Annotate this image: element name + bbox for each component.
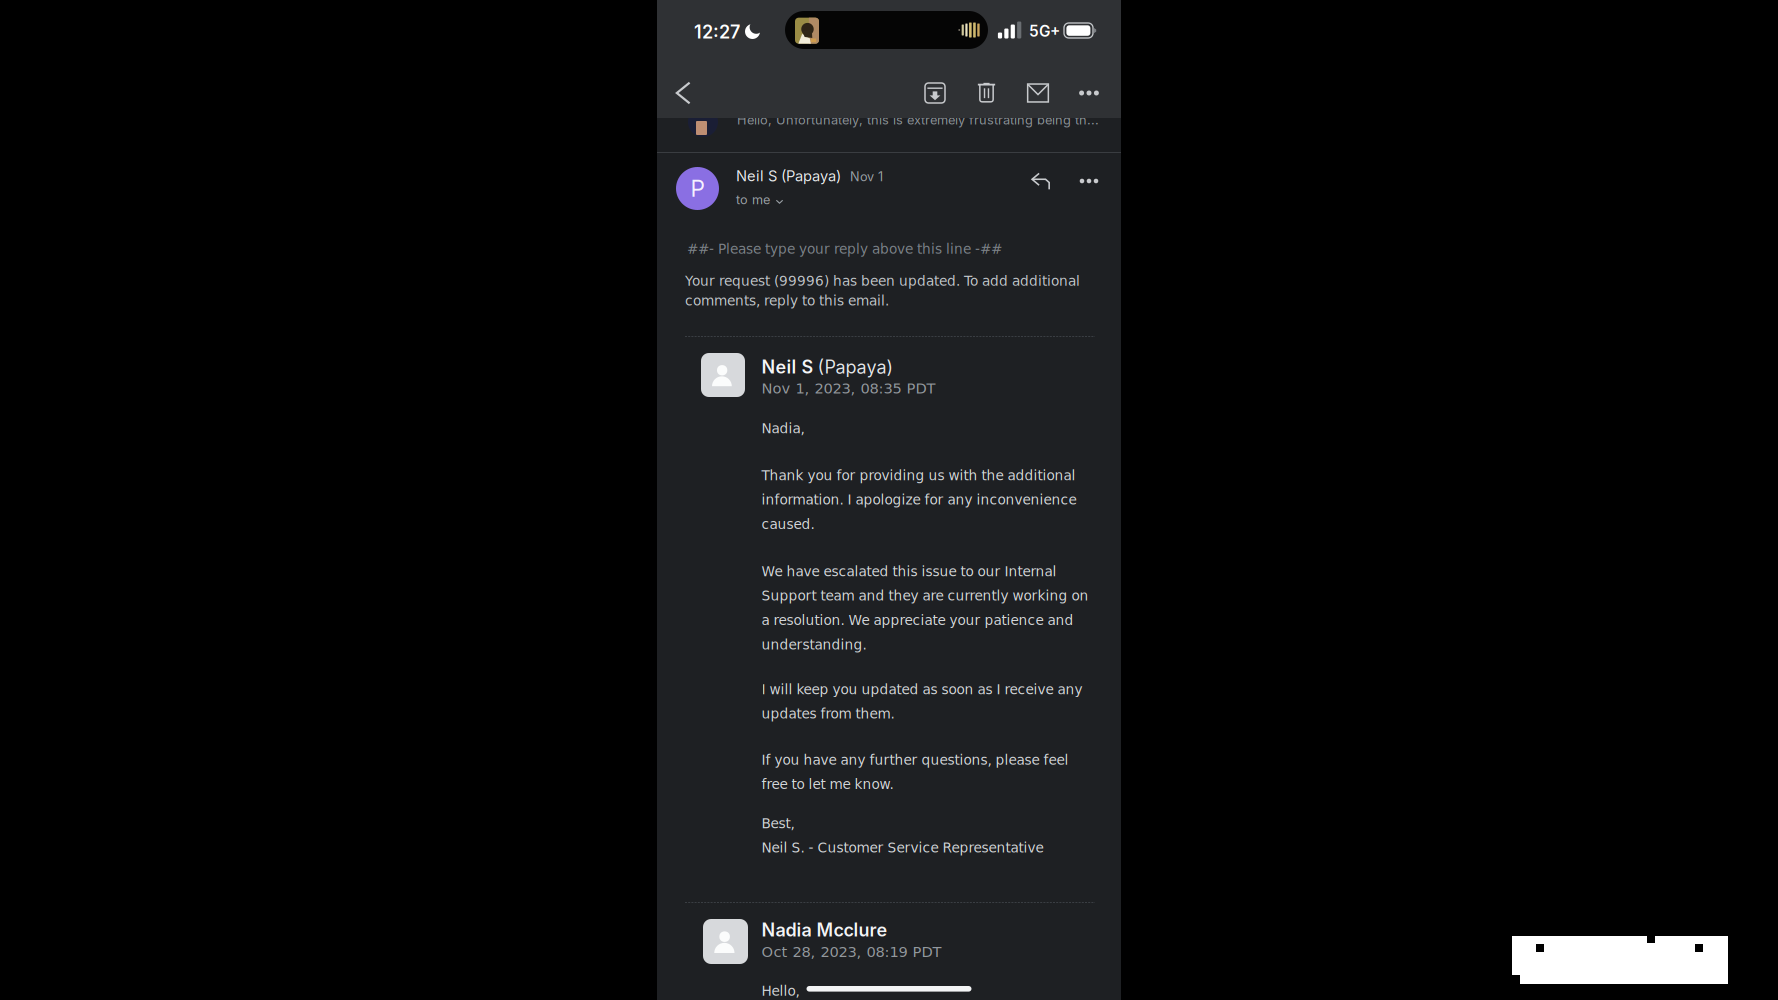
staticText: Best, Neil S. - Customer Service Represe… [761,815,1043,856]
staticText: Nov 1, 2023, 08:35 PDT [761,380,935,397]
staticText: Neil S (Papaya) [736,167,841,185]
staticText: If you have any further questions, pleas… [761,752,1068,792]
button[interactable]: Delete [964,70,1008,114]
staticText: Your request (99996) has been updated. T… [685,273,1080,309]
staticText: Nadia Mcclure [761,919,887,941]
staticText: We have escalated this issue to our Inte… [761,563,1088,653]
button[interactable]: Reply [1022,162,1060,200]
button[interactable]: to me [736,192,783,207]
button[interactable]: P [657,153,997,213]
staticText: Hello, [761,983,799,999]
staticText: Neil S [761,356,813,378]
staticText: Thank you for providing us with the addi… [761,467,1076,532]
staticText: 5G+ [1029,22,1060,41]
staticText: ##- Please type your reply above this li… [687,241,1002,257]
button[interactable]: Back [661,71,705,115]
button[interactable]: Archive [913,71,957,115]
button[interactable]: Mark as unread [1016,71,1060,115]
button[interactable]: More options [1068,71,1110,115]
staticText: I will keep you updated as soon as I rec… [761,681,1082,722]
staticText: to me [736,192,770,207]
button[interactable]: Hello, Unfortunately, this is extremely … [657,104,1121,152]
staticText: Hello, Unfortunately, this is extremely … [737,112,1099,127]
staticText: Nov 1 [850,169,883,184]
button[interactable]: More options [1070,162,1108,200]
button[interactable]: Neil S [657,351,997,399]
staticText: Nadia, [761,420,804,436]
button[interactable]: Nadia Mcclure [657,917,997,965]
staticText: Oct 28, 2023, 08:19 PDT [761,943,941,961]
staticText: 12:27 [694,21,740,43]
staticText: (Papaya) [817,356,893,378]
staticText: P [690,175,704,202]
